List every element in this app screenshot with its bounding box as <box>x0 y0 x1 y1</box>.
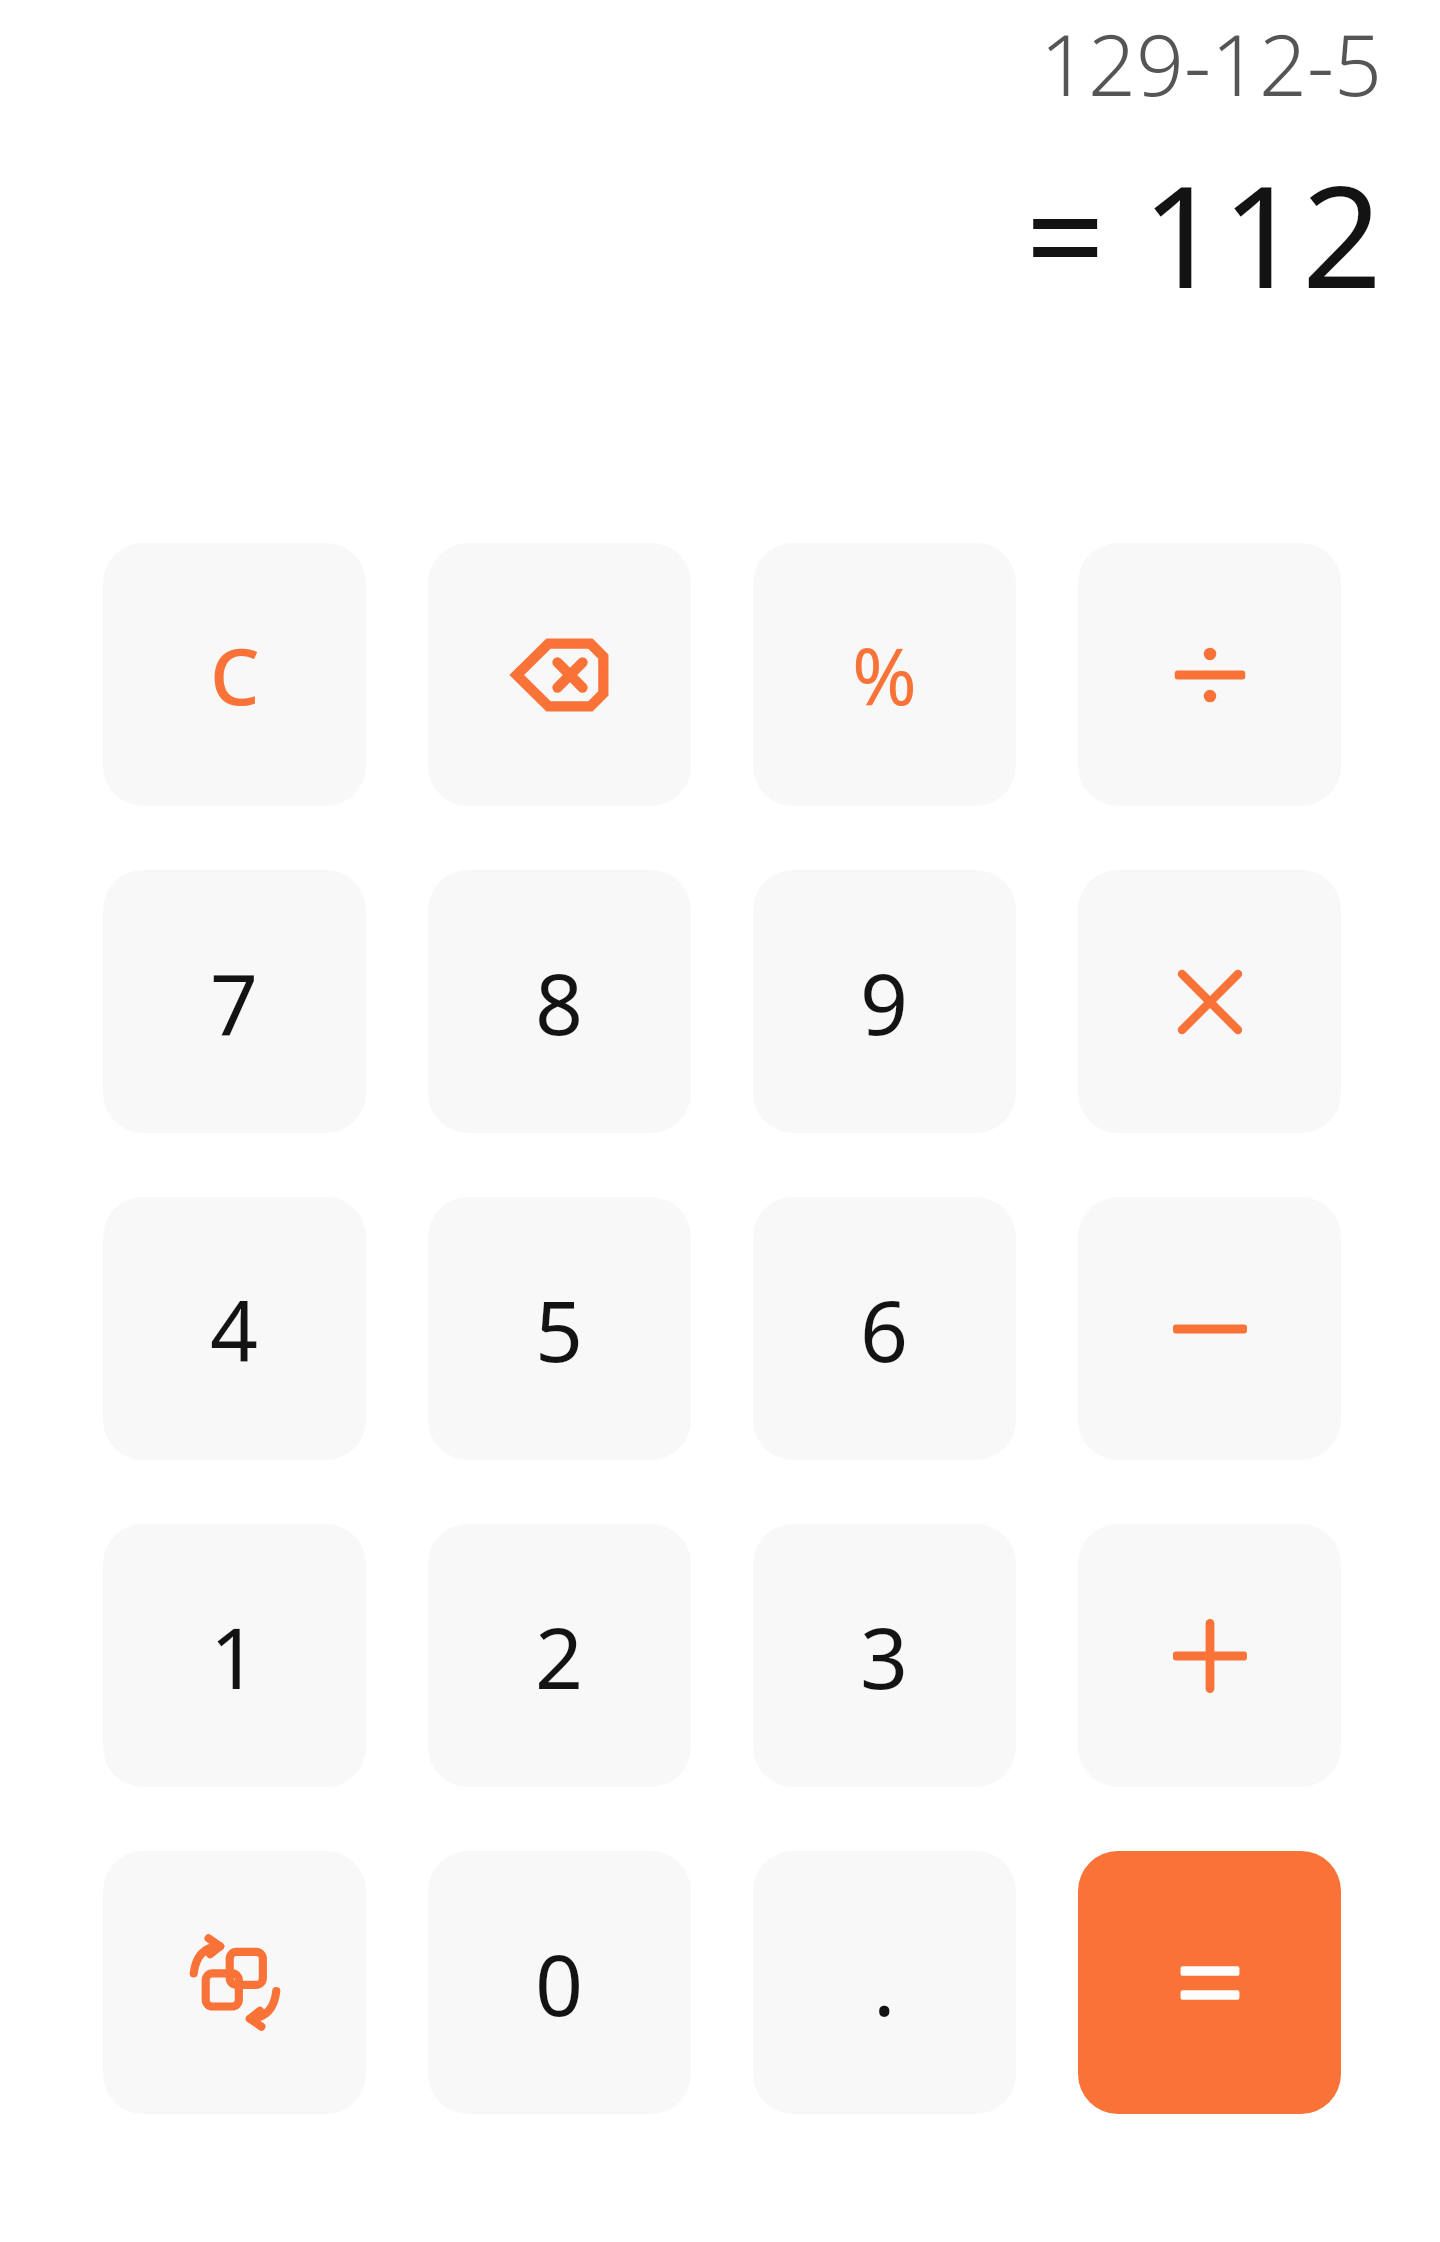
staticText: C <box>210 622 260 728</box>
staticText: 5 <box>535 1272 584 1386</box>
button[interactable]: Convert <box>103 1851 366 2114</box>
staticText: 6 <box>860 1272 909 1386</box>
staticText: 0 <box>535 1926 584 2040</box>
button[interactable]: 3 <box>753 1524 1016 1787</box>
staticText: = 112 <box>1025 138 1382 329</box>
staticText: 4 <box>210 1272 259 1386</box>
button[interactable]: C <box>103 543 366 806</box>
button[interactable]: Multiply <box>1078 870 1341 1133</box>
button[interactable]: 9 <box>753 870 1016 1133</box>
button[interactable]: 0 <box>428 1851 691 2114</box>
button[interactable]: . <box>753 1851 1016 2114</box>
button[interactable]: % <box>753 543 1016 806</box>
staticText: % <box>852 622 917 728</box>
staticText: 7 <box>210 945 259 1059</box>
staticText: 129-12-5 <box>1040 6 1382 120</box>
staticText: 1 <box>210 1599 259 1713</box>
button[interactable]: Divide <box>1078 543 1341 806</box>
button[interactable]: Plus <box>1078 1524 1341 1787</box>
staticText: 2 <box>535 1599 584 1713</box>
staticText: 9 <box>860 945 909 1059</box>
button[interactable]: 2 <box>428 1524 691 1787</box>
button[interactable]: 7 <box>103 870 366 1133</box>
staticText: 8 <box>535 945 584 1059</box>
button[interactable]: 1 <box>103 1524 366 1787</box>
button[interactable]: 8 <box>428 870 691 1133</box>
staticText: 3 <box>860 1599 909 1713</box>
staticText: . <box>873 1926 896 2040</box>
button[interactable]: 4 <box>103 1197 366 1460</box>
button[interactable]: Backspace <box>428 543 691 806</box>
button[interactable]: Equals <box>1078 1851 1341 2114</box>
button[interactable]: 6 <box>753 1197 1016 1460</box>
button[interactable]: 5 <box>428 1197 691 1460</box>
button[interactable]: Minus <box>1078 1197 1341 1460</box>
